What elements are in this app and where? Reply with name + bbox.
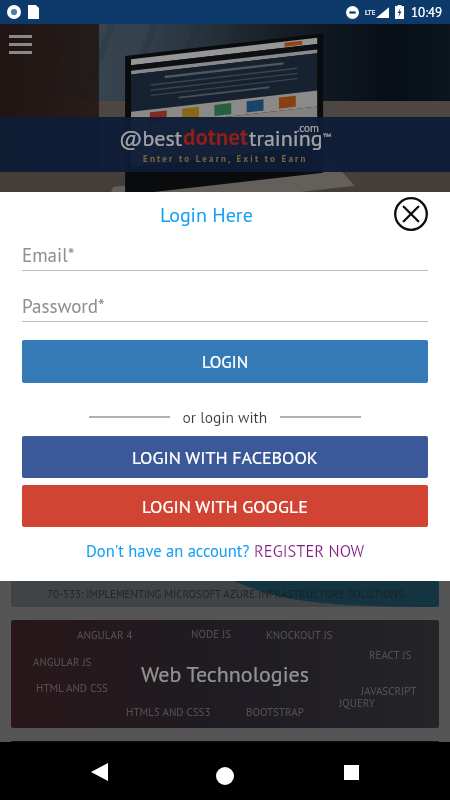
staticText: 10:49 — [411, 4, 443, 21]
button[interactable]: Email* — [22, 243, 428, 271]
staticText: @best — [119, 124, 183, 152]
staticText: LTE — [365, 8, 376, 17]
staticText: 70-533: IMPLEMENTING MICROSOFT AZURE INF… — [47, 587, 404, 601]
button[interactable]: Login Here — [160, 202, 253, 228]
staticText: Web Technologies — [141, 660, 310, 688]
staticText: KNOCKOUT JS — [266, 628, 333, 642]
staticText: LOGIN — [202, 351, 249, 373]
button[interactable]: Close — [391, 194, 431, 234]
button[interactable]: ANGULAR 4 — [11, 620, 439, 728]
button[interactable]: Don't have an account? — [0, 540, 450, 561]
staticText: dotnet — [183, 122, 249, 152]
button[interactable]: 70-533: IMPLEMENTING MICROSOFT AZURE INF… — [11, 581, 439, 607]
button[interactable]: Open navigation menu — [9, 35, 32, 54]
button[interactable]: Home — [200, 751, 250, 800]
staticText: HTML5 AND CSS3 — [126, 705, 211, 719]
staticText: .com — [297, 121, 319, 135]
staticText: HTML AND CSS — [36, 681, 108, 695]
staticText: Enter to Learn, Exit to Earn — [143, 153, 308, 165]
staticText: training — [249, 124, 323, 152]
staticText: JAVASCRIPT — [361, 684, 417, 698]
staticText: ™ — [323, 131, 331, 143]
button[interactable]: LOGIN — [22, 340, 428, 383]
staticText: Don't have an account? — [86, 540, 254, 561]
button[interactable]: LOGIN WITH GOOGLE — [22, 485, 428, 527]
button[interactable]: LOGIN WITH FACEBOOK — [22, 436, 428, 478]
button[interactable]: Password* — [22, 294, 428, 322]
button[interactable]: Recent apps — [326, 747, 376, 797]
staticText: ANGULAR JS — [33, 655, 92, 669]
staticText: Email* — [22, 243, 75, 268]
staticText: BOOTSTRAP — [246, 705, 304, 719]
staticText: REGISTER NOW — [254, 540, 365, 561]
button[interactable]: Back — [74, 747, 124, 797]
staticText: Password* — [22, 294, 105, 319]
staticText: LOGIN WITH FACEBOOK — [132, 446, 318, 469]
staticText: or login with — [170, 407, 280, 427]
staticText: NODE JS — [191, 627, 231, 641]
staticText: LOGIN WITH GOOGLE — [142, 495, 308, 518]
staticText: REACT JS — [369, 648, 412, 662]
staticText: ANGULAR 4 — [77, 628, 133, 642]
staticText: JQUERY — [339, 696, 375, 710]
